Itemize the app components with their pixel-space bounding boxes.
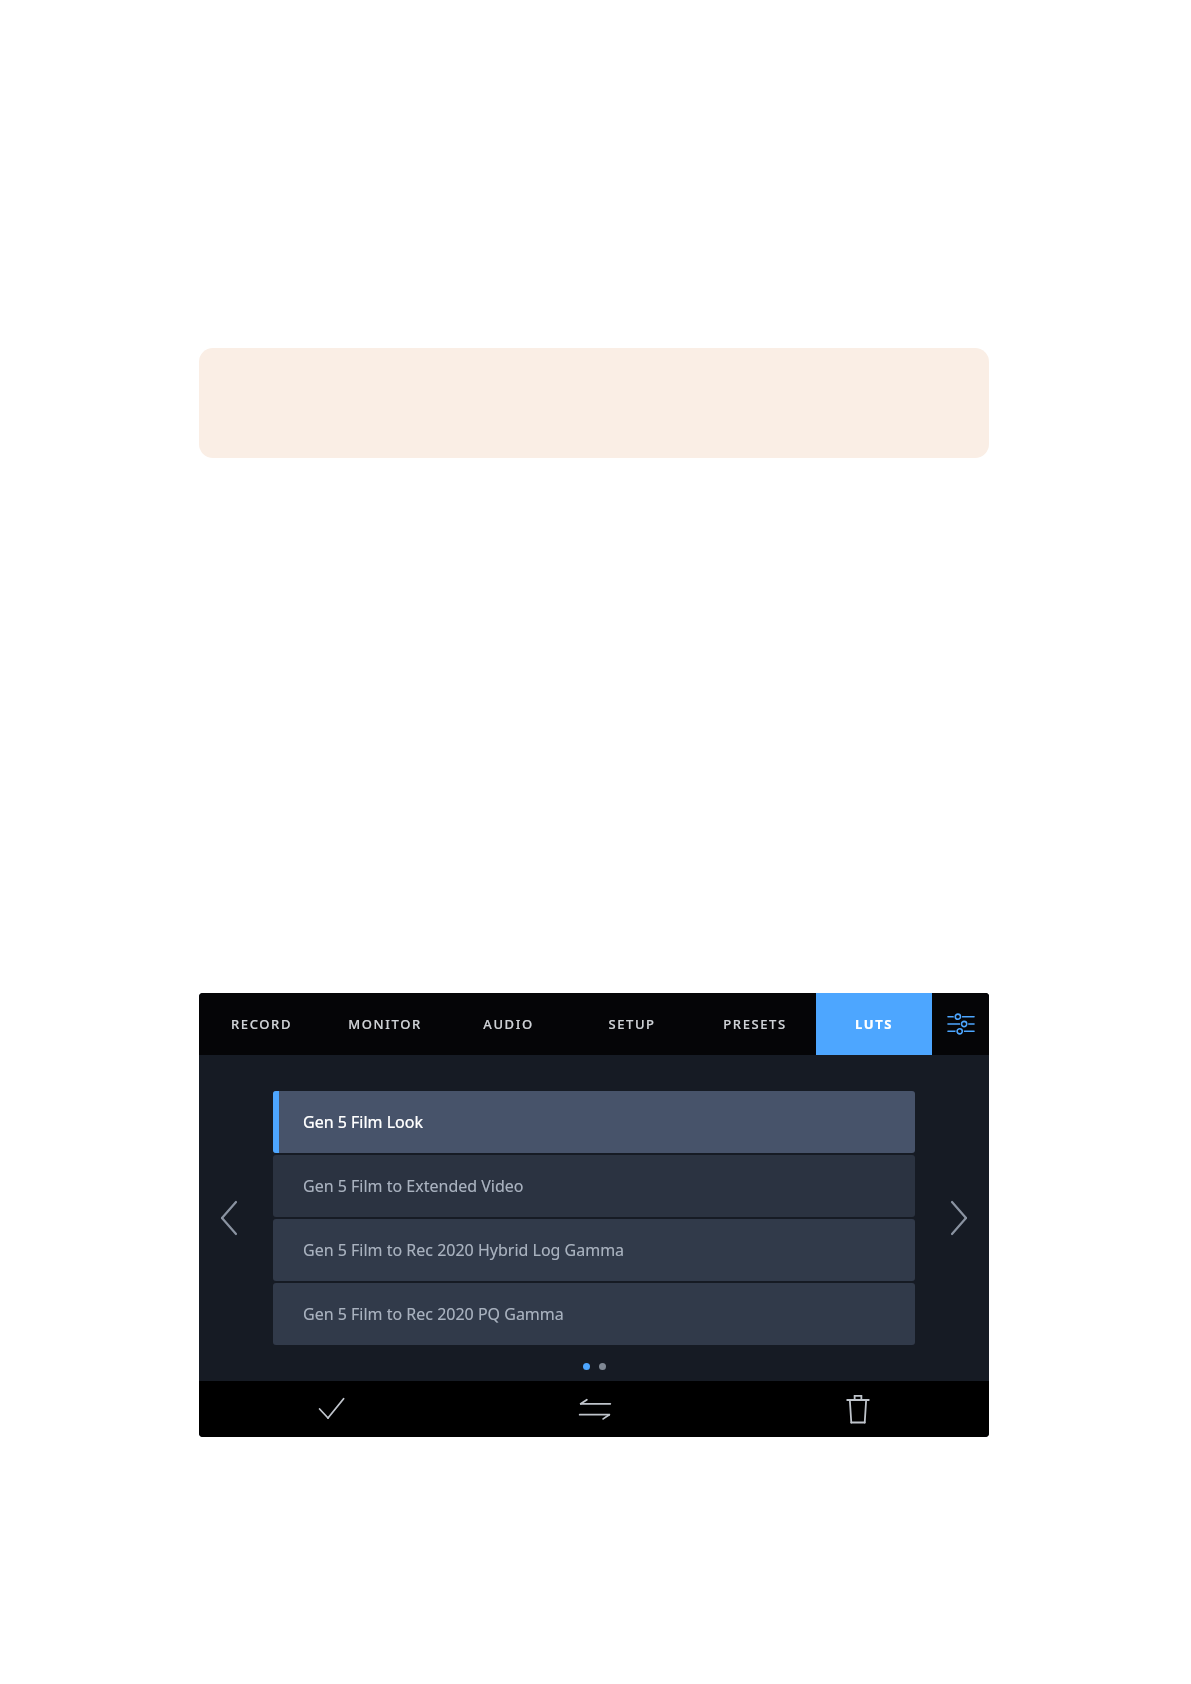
staticText: Gen 5 Film to Extended Video xyxy=(303,1175,524,1197)
button[interactable]: RECORD xyxy=(199,993,323,1055)
button[interactable]: PRESETS xyxy=(693,993,816,1055)
staticText: RECORD xyxy=(231,1015,292,1033)
button[interactable]: Gen 5 Film to Rec 2020 PQ Gamma xyxy=(273,1283,915,1345)
button[interactable]: AUDIO xyxy=(447,993,570,1055)
staticText: SETUP xyxy=(608,1015,656,1033)
staticText: Gen 5 Film to Rec 2020 PQ Gamma xyxy=(303,1303,564,1325)
button[interactable]: Settings xyxy=(932,993,989,1055)
button[interactable]: Delete xyxy=(726,1381,989,1437)
button[interactable]: LUTS xyxy=(816,993,932,1055)
staticText: Gen 5 Film Look xyxy=(303,1111,424,1133)
button[interactable]: Gen 5 Film Look xyxy=(273,1091,915,1153)
button[interactable]: Transfer xyxy=(463,1381,726,1437)
staticText: MONITOR xyxy=(348,1015,422,1033)
button[interactable]: Gen 5 Film to Extended Video xyxy=(273,1155,915,1217)
button[interactable]: Previous page xyxy=(199,1055,259,1381)
staticText: AUDIO xyxy=(483,1015,534,1033)
staticText: Gen 5 Film to Rec 2020 Hybrid Log Gamma xyxy=(303,1239,625,1261)
staticText: LUTS xyxy=(855,1015,894,1033)
staticText: PRESETS xyxy=(723,1015,787,1033)
button[interactable]: SETUP xyxy=(570,993,693,1055)
button[interactable]: Next page xyxy=(929,1055,989,1381)
button[interactable]: Gen 5 Film to Rec 2020 Hybrid Log Gamma xyxy=(273,1219,915,1281)
button[interactable]: Apply xyxy=(199,1381,463,1437)
button[interactable]: MONITOR xyxy=(323,993,447,1055)
